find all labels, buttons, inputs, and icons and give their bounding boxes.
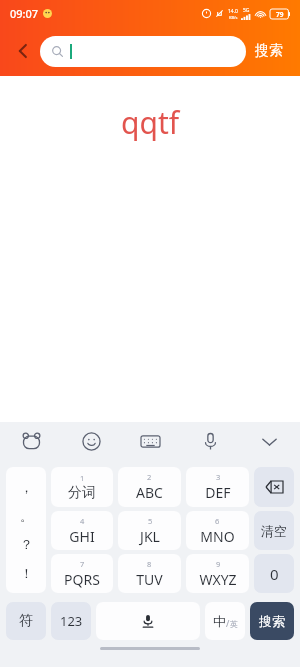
button[interactable]: Hide keyboard xyxy=(254,426,284,456)
button[interactable]: 9 xyxy=(186,554,249,593)
staticText: ！ xyxy=(20,565,33,581)
button[interactable]: 3 xyxy=(186,467,249,507)
button[interactable]: 5 xyxy=(118,511,181,550)
button[interactable]: Keyboard layout xyxy=(135,426,165,456)
staticText: 搜索 xyxy=(259,613,285,629)
button[interactable]: Back xyxy=(6,34,40,68)
staticText: 123 xyxy=(60,612,83,630)
button[interactable]: 1 xyxy=(51,467,113,507)
button[interactable]: 6 xyxy=(186,511,249,550)
staticText: qqtf xyxy=(121,102,180,143)
button[interactable]: 清空 xyxy=(254,511,294,550)
staticText: 英 xyxy=(230,619,238,629)
staticText: ， xyxy=(20,479,33,495)
button[interactable]: 123 xyxy=(51,602,91,640)
staticText: DEF xyxy=(205,483,231,502)
staticText: 8 xyxy=(147,559,152,569)
staticText: 3 xyxy=(216,472,221,482)
staticText: 5 xyxy=(148,516,153,526)
staticText: 搜索 xyxy=(255,42,283,60)
staticText: ABC xyxy=(136,483,163,502)
button[interactable]: Space, voice input xyxy=(96,602,200,640)
button[interactable]: 8 xyxy=(118,554,181,593)
staticText: 5G xyxy=(243,7,250,14)
button[interactable]: Baidu input xyxy=(16,426,46,456)
staticText: GHI xyxy=(69,527,95,546)
staticText: 0 xyxy=(270,564,279,584)
button[interactable] xyxy=(40,36,246,67)
button[interactable]: 搜索 xyxy=(250,602,294,640)
button[interactable]: 符 xyxy=(6,602,46,640)
button[interactable]: ， xyxy=(6,467,46,593)
staticText: MNO xyxy=(200,527,235,546)
button[interactable]: 2 xyxy=(118,467,181,507)
staticText: JKL xyxy=(140,527,160,546)
button[interactable]: Emoji xyxy=(76,426,106,456)
staticText: 14.0 xyxy=(228,8,238,15)
button[interactable]: 中 xyxy=(205,602,245,640)
button[interactable]: 7 xyxy=(51,554,113,593)
button[interactable]: 0 xyxy=(254,554,294,593)
staticText: 1 xyxy=(80,473,85,483)
button[interactable] xyxy=(254,467,294,507)
staticText: 79 xyxy=(276,10,284,19)
staticText: 清空 xyxy=(261,523,287,539)
button[interactable]: 4 xyxy=(51,511,113,550)
staticText: ？ xyxy=(20,536,33,552)
button[interactable]: Voice input xyxy=(195,426,225,456)
staticText: WXYZ xyxy=(199,570,237,589)
staticText: 符 xyxy=(19,612,33,630)
staticText: 6 xyxy=(215,516,220,526)
staticText: 。 xyxy=(20,508,33,524)
staticText: 分词 xyxy=(68,484,96,502)
staticText: 09:07 xyxy=(10,6,39,21)
staticText: / xyxy=(226,617,230,629)
staticText: KB/s xyxy=(229,15,238,20)
staticText: 2 xyxy=(147,472,152,482)
staticText: 中 xyxy=(213,613,226,629)
staticText: 7 xyxy=(80,559,85,569)
staticText: 4 xyxy=(80,516,85,526)
staticText: TUV xyxy=(136,570,163,589)
button[interactable]: 搜索 xyxy=(255,42,283,60)
staticText: PQRS xyxy=(64,570,100,589)
staticText: 9 xyxy=(216,559,221,569)
